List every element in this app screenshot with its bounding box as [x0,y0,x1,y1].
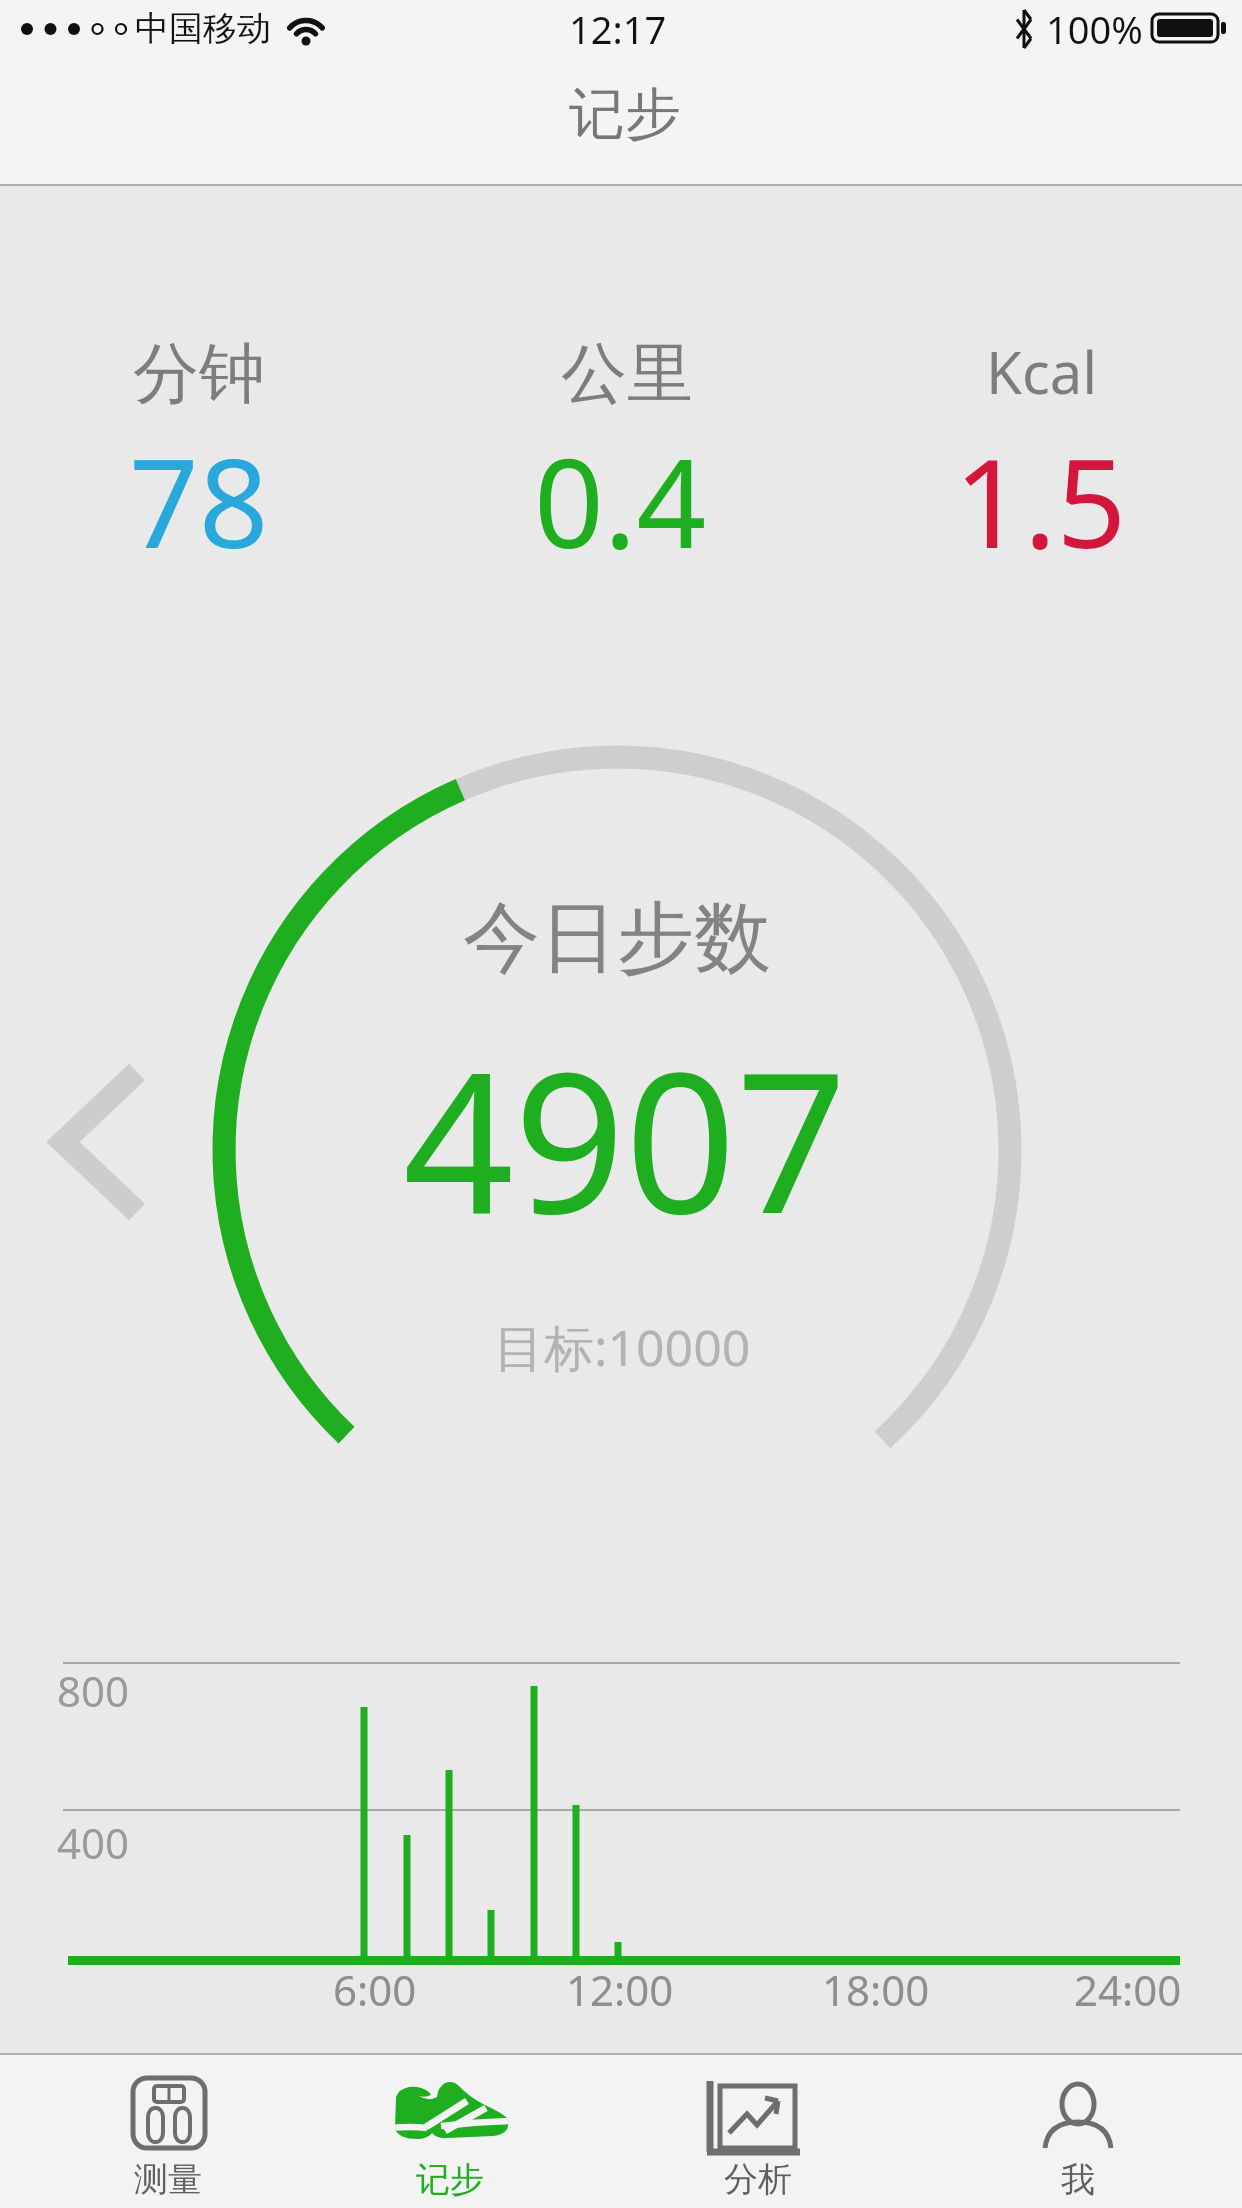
staticText: 6:00 [333,1961,417,2018]
staticText: Kcal [986,332,1098,411]
staticText: 记步 [416,2158,484,2201]
staticText: 100% [1046,3,1143,55]
staticText: 公里 [561,332,693,415]
button[interactable]: 我 [968,2056,1188,2206]
staticText: 测量 [134,2158,202,2201]
staticText: 今日步数 [463,890,771,987]
staticText: 18:00 [822,1961,930,2018]
button[interactable]: 测量 [58,2056,278,2206]
staticText: 我 [1061,2158,1095,2201]
staticText: 12:00 [566,1961,674,2018]
staticText: 400 [57,1814,130,1871]
staticText: 分钟 [133,332,265,415]
button[interactable] [30,1050,170,1240]
button[interactable]: 记步 [340,2056,560,2206]
staticText: 目标:10000 [494,1313,751,1381]
staticText: 12:17 [569,3,667,55]
button[interactable]: 分析 [648,2056,868,2206]
staticText: 24:00 [1074,1961,1182,2018]
staticText: 中国移动 [135,7,271,50]
staticText: 4907 [403,1006,847,1270]
staticText: 0.4 [534,418,707,584]
staticText: 记步 [569,79,681,150]
staticText: 800 [57,1662,130,1719]
staticText: 78 [129,418,269,584]
staticText: 1.5 [954,418,1127,584]
staticText: 分析 [724,2158,792,2201]
